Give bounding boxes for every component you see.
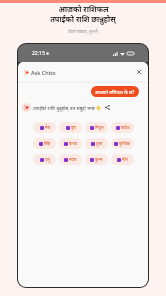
staticText: Ask Chito bbox=[31, 69, 56, 76]
staticText: तपाईंको राशि चुन्नुहोस् तल सबुद्दो भन्छ … bbox=[33, 105, 102, 111]
button[interactable]: सिंह bbox=[33, 138, 56, 149]
staticText: धनु bbox=[45, 157, 50, 163]
button[interactable]: मीन bbox=[111, 154, 134, 165]
button[interactable]: धनु bbox=[33, 154, 56, 165]
staticText: कर्कट bbox=[121, 125, 130, 131]
staticText: आजको राशिफल bbox=[58, 4, 109, 14]
button[interactable]: आजको राशिफल के छ? bbox=[91, 86, 139, 97]
staticText: मिथुन bbox=[95, 125, 104, 131]
staticText: चितो एपबाट, तुरुन्तै bbox=[68, 29, 98, 35]
button[interactable]: वृष bbox=[59, 122, 82, 133]
button[interactable]: वृश्चिक bbox=[111, 138, 134, 149]
staticText: कन्या bbox=[69, 141, 77, 147]
button[interactable]: मिथुन bbox=[85, 122, 108, 133]
button[interactable]: तुला bbox=[85, 138, 108, 149]
staticText: 22:15 bbox=[32, 50, 45, 57]
button[interactable]: Close bbox=[134, 67, 144, 77]
staticText: मीन bbox=[122, 157, 128, 163]
staticText: मकर bbox=[69, 157, 77, 163]
button[interactable]: Share bbox=[105, 105, 110, 110]
staticText: वृष bbox=[71, 125, 76, 131]
button[interactable]: मकर bbox=[59, 154, 82, 165]
staticText: आजको राशिफल के छ? bbox=[95, 89, 135, 95]
button[interactable]: मेष bbox=[33, 122, 56, 133]
staticText: तुला bbox=[96, 141, 103, 147]
button[interactable]: कुम्भ bbox=[85, 154, 108, 165]
staticText: सिंह bbox=[44, 141, 51, 147]
staticText: कुम्भ bbox=[95, 157, 103, 163]
staticText: मेष bbox=[45, 125, 50, 131]
button[interactable]: कन्या bbox=[59, 138, 82, 149]
button[interactable]: कर्कट bbox=[111, 122, 134, 133]
staticText: तपाईंको राशि छान्नुहोस् bbox=[50, 14, 116, 24]
staticText: वृश्चिक bbox=[119, 141, 131, 147]
